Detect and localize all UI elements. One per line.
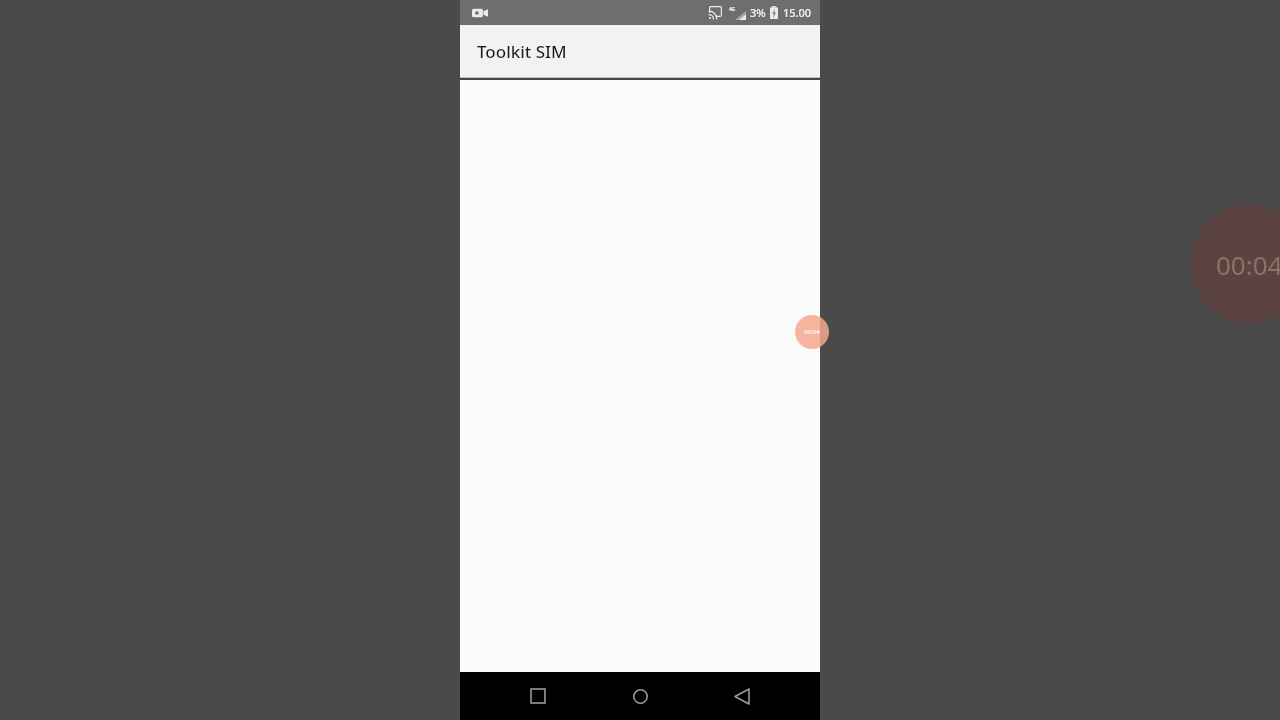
staticText: 3% xyxy=(750,5,766,20)
button[interactable]: Home xyxy=(616,672,664,720)
staticText: 4G xyxy=(729,6,736,13)
staticText: 00:04 xyxy=(804,328,820,336)
staticText: Toolkit SIM xyxy=(477,40,567,63)
staticText: 00:04 xyxy=(1216,247,1280,282)
other: Screen recording xyxy=(472,5,488,21)
button[interactable]: Recent apps xyxy=(514,672,562,720)
button[interactable]: Toolkit SIM xyxy=(460,25,820,77)
button[interactable]: Back xyxy=(718,672,766,720)
staticText: 15.00 xyxy=(783,5,812,20)
